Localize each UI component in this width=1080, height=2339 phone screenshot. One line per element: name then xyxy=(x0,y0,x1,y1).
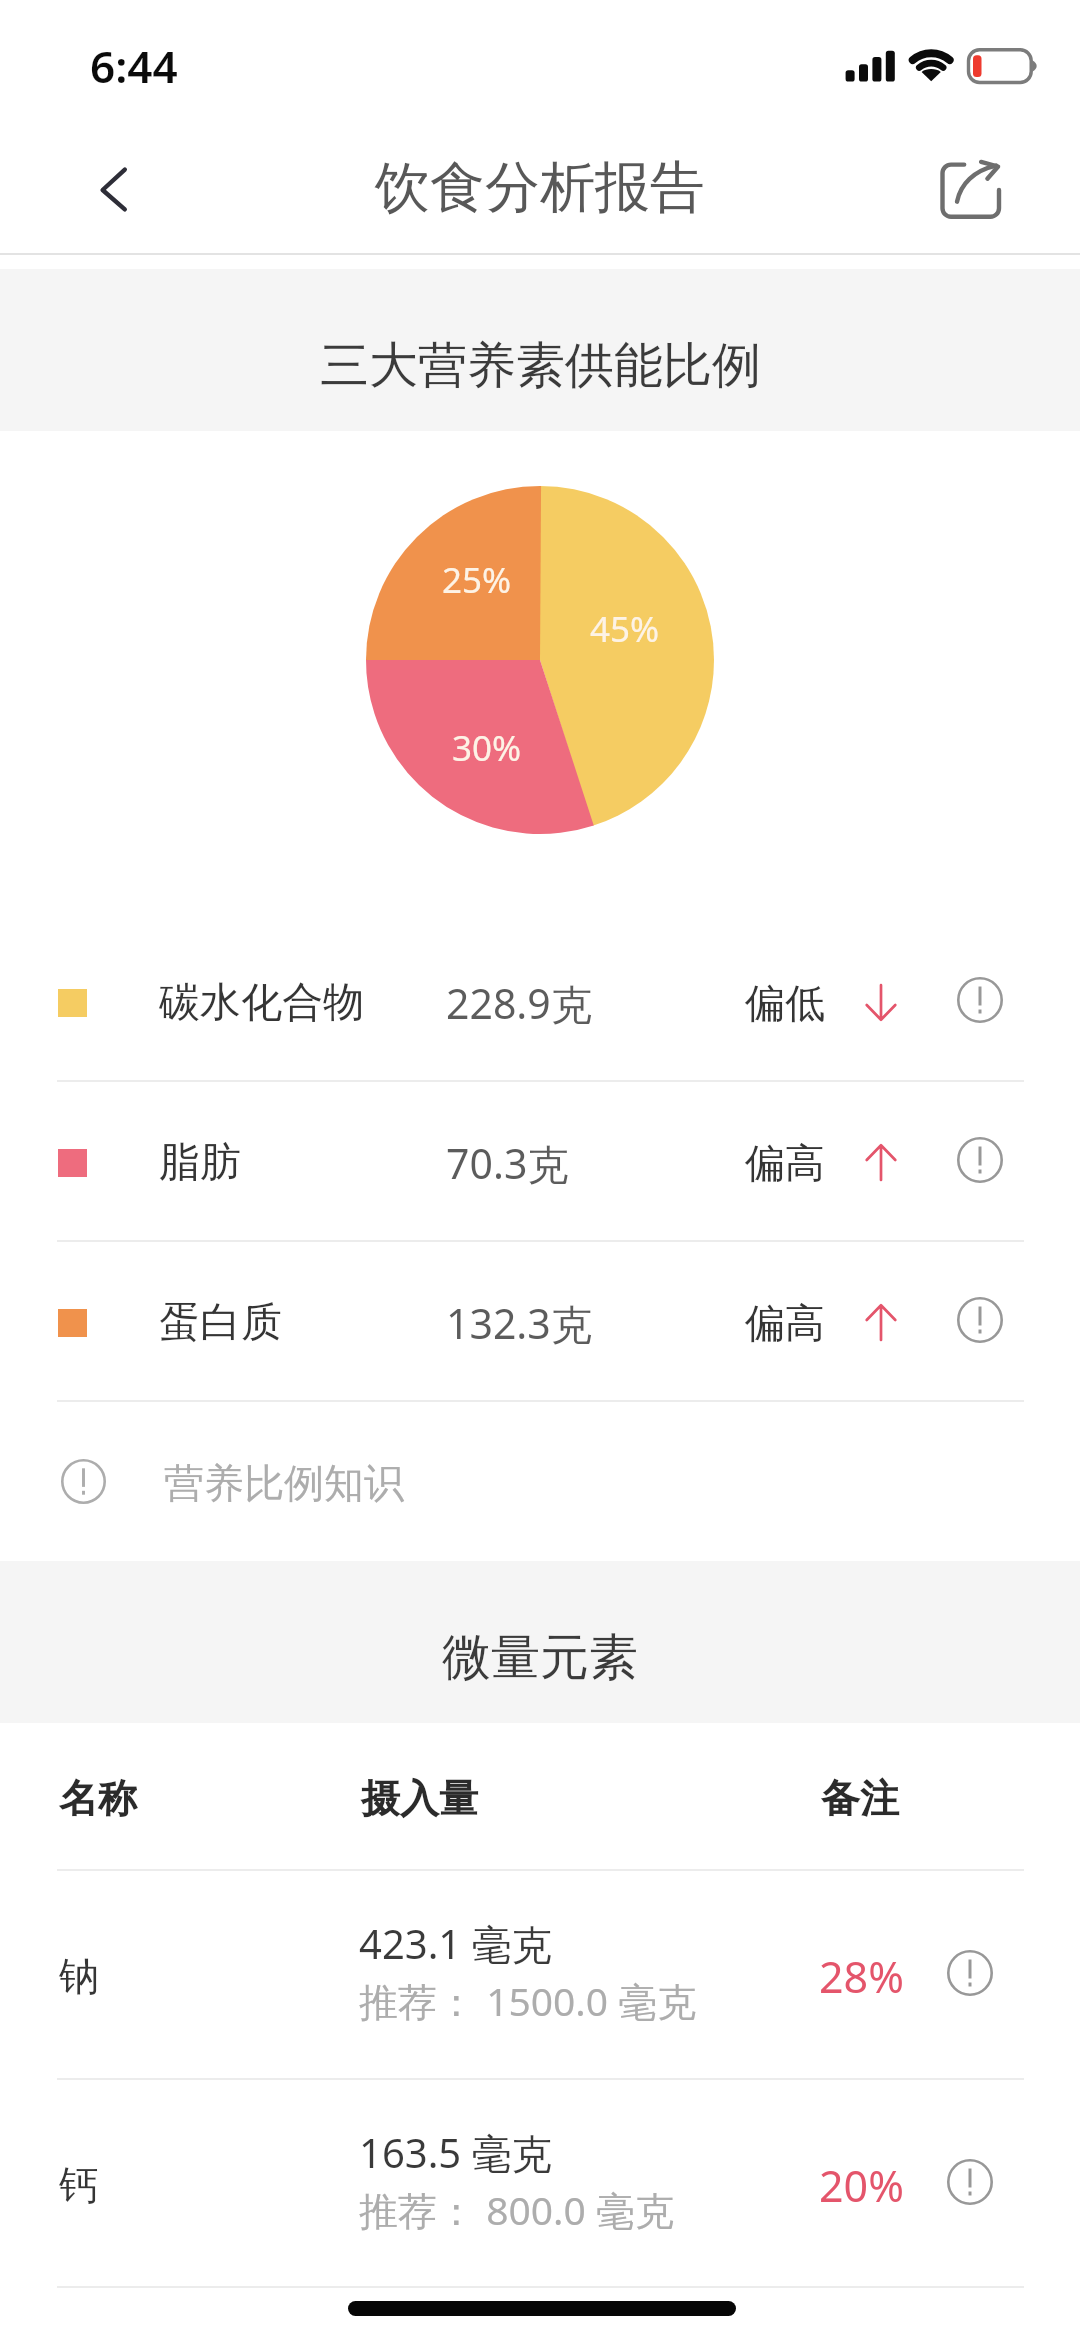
staticText: 微量元素 xyxy=(442,1627,638,1689)
staticText: 钙 xyxy=(59,2160,99,2210)
staticText: 25% xyxy=(442,556,512,604)
staticText: 钠 xyxy=(59,1951,99,2001)
button[interactable]: More info xyxy=(957,1137,1003,1183)
staticText: 推荐： 1500.0 毫克 xyxy=(359,1974,697,2027)
button[interactable]: 蛋白质 xyxy=(0,1240,1080,1400)
button[interactable]: 脂肪 xyxy=(0,1080,1080,1240)
staticText: 偏高 xyxy=(745,1138,825,1188)
staticText: 碳水化合物 xyxy=(159,977,364,1029)
staticText: 蛋白质 xyxy=(159,1297,282,1349)
staticText: 推荐： 800.0 毫克 xyxy=(359,2183,674,2236)
staticText: 名称 xyxy=(59,1774,137,1823)
staticText: 132.3克 xyxy=(446,1295,592,1351)
staticText: 30% xyxy=(452,724,522,772)
staticText: 偏低 xyxy=(745,978,825,1028)
staticText: 营养比例知识 xyxy=(164,1458,404,1508)
staticText: 饮食分析报告 xyxy=(375,153,705,222)
button[interactable]: 钠 xyxy=(0,1869,1080,2077)
staticText: 45% xyxy=(590,605,660,653)
button[interactable]: 钙 xyxy=(0,2078,1080,2286)
button[interactable]: Back xyxy=(54,131,174,251)
staticText: 备注 xyxy=(821,1774,899,1823)
staticText: 6:44 xyxy=(90,36,178,96)
button[interactable]: More info xyxy=(947,2159,993,2205)
button[interactable]: More info xyxy=(0,1400,1080,1561)
button[interactable]: More info xyxy=(957,977,1003,1023)
staticText: 163.5 毫克 xyxy=(359,2125,552,2180)
button[interactable]: More info xyxy=(947,1950,993,1996)
button[interactable]: More info xyxy=(957,1297,1003,1343)
staticText: 70.3克 xyxy=(446,1135,569,1191)
staticText: 20% xyxy=(819,2156,904,2215)
staticText: 脂肪 xyxy=(159,1137,241,1189)
staticText: 三大营养素供能比例 xyxy=(320,335,761,397)
staticText: 28% xyxy=(819,1947,904,2006)
button[interactable]: 碳水化合物 xyxy=(0,920,1080,1080)
button[interactable]: Share xyxy=(910,131,1040,251)
staticText: 摄入量 xyxy=(361,1774,478,1823)
button[interactable]: More info xyxy=(61,1459,106,1504)
staticText: 228.9克 xyxy=(446,975,592,1031)
staticText: 偏高 xyxy=(745,1298,825,1348)
staticText: 423.1 毫克 xyxy=(359,1916,552,1971)
